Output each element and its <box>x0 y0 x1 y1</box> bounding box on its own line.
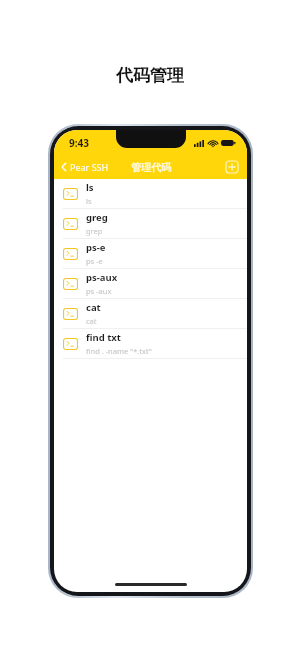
staticText: 9:43 <box>69 136 89 150</box>
staticText: greg <box>86 211 108 224</box>
button[interactable]: Pear SSH <box>54 158 117 176</box>
staticText: ls <box>86 196 92 206</box>
staticText: cat <box>86 316 97 326</box>
staticText: ps-e <box>86 241 106 254</box>
staticText: grep <box>86 226 103 236</box>
staticText: cat <box>86 301 101 314</box>
staticText: Pear SSH <box>70 161 109 173</box>
button[interactable]: Add command <box>225 160 239 174</box>
button[interactable]: ps-e <box>54 239 247 269</box>
button[interactable]: cat <box>54 299 247 329</box>
button[interactable]: ps-aux <box>54 269 247 299</box>
staticText: find . -name "*.txt" <box>86 346 152 356</box>
button[interactable]: find txt <box>54 329 247 359</box>
staticText: find txt <box>86 331 121 344</box>
staticText: ps -e <box>86 256 103 266</box>
button[interactable]: greg <box>54 209 247 239</box>
staticText: 代码管理 <box>116 65 184 86</box>
button[interactable]: ls <box>54 179 247 209</box>
staticText: ls <box>86 181 94 194</box>
staticText: ps-aux <box>86 271 118 284</box>
staticText: ps -aux <box>86 286 112 296</box>
staticText: 管理代码 <box>131 161 171 174</box>
